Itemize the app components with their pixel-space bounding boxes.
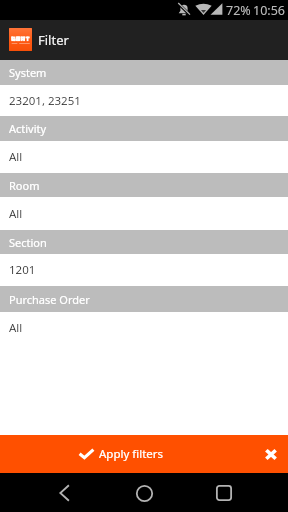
staticText: 72% (226, 2, 251, 19)
button[interactable]: Close (254, 435, 288, 473)
staticText: 1201 (9, 262, 36, 278)
staticText: System (9, 65, 47, 80)
staticText: All (9, 320, 23, 336)
button[interactable]: App logo (9, 28, 32, 51)
staticText: Apply filters (99, 446, 164, 462)
staticText: Activity (9, 121, 47, 136)
button[interactable]: Apply filters (0, 435, 242, 473)
button[interactable]: All (0, 312, 288, 343)
staticText: Purchase Order (9, 292, 90, 307)
staticText: All (9, 149, 23, 165)
button[interactable]: Back (48, 477, 80, 509)
button[interactable]: 23201, 23251 (0, 85, 288, 116)
staticText: Room (9, 178, 40, 193)
staticText: All (9, 206, 23, 222)
button[interactable]: All (0, 197, 288, 230)
button[interactable]: Home (128, 477, 160, 509)
staticText: 23201, 23251 (9, 93, 81, 109)
button[interactable]: 1201 (0, 254, 288, 286)
staticText: Section (9, 235, 47, 250)
button[interactable]: All (0, 141, 288, 173)
staticText: 10:56 (253, 2, 285, 19)
button[interactable]: Recents (208, 477, 240, 509)
staticText: Filter (38, 31, 69, 49)
